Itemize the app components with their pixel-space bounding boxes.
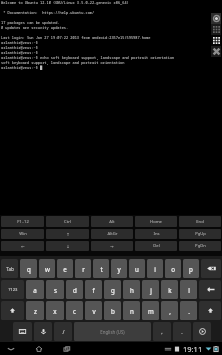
button[interactable]: , [153,322,171,341]
staticText: k [168,286,172,294]
staticText: English (US) [100,329,125,335]
button[interactable]: w [39,259,55,278]
button[interactable]: Shift [199,301,221,320]
staticText: ← [21,244,25,249]
staticText: y [117,265,121,273]
button[interactable]: Backspace [201,259,221,278]
button[interactable]: Enter [199,280,221,299]
staticText: g [111,286,115,294]
button[interactable]: x [46,301,64,320]
button[interactable]: / [54,322,72,341]
button[interactable]: q [20,259,37,278]
button[interactable]: Del [135,241,177,251]
button[interactable]: English (US) [74,322,151,341]
button[interactable]: , [161,301,178,320]
staticText: u [135,265,139,273]
staticText: x [53,307,57,315]
staticText: PgUp [195,231,206,237]
button[interactable]: Home [32,342,46,355]
button[interactable]: v [85,301,102,320]
button[interactable]: . [180,301,197,320]
staticText: f [92,286,95,294]
button[interactable]: . [173,322,191,341]
button[interactable]: End [179,216,221,227]
button[interactable]: k [161,280,178,299]
button[interactable]: Ins [135,229,177,239]
button[interactable]: b [104,301,121,320]
button[interactable]: F1..12 [1,216,44,227]
button[interactable]: PgDn [179,241,221,251]
button[interactable]: ↓ [46,241,89,251]
staticText: j [150,286,152,294]
button[interactable]: Tab [1,259,18,278]
staticText: ↑ [66,232,70,237]
button[interactable]: Go [193,322,211,341]
button[interactable]: ?123 [1,280,24,299]
button[interactable]: p [183,259,199,278]
button[interactable]: s [46,280,64,299]
button[interactable]: Win [1,229,44,239]
staticText: → [110,244,114,249]
button[interactable]: ↑ [46,229,89,239]
button[interactable]: Switch keyboard [13,322,32,341]
button[interactable]: f [85,280,102,299]
button[interactable]: r [75,259,91,278]
staticText: c [73,307,76,315]
staticText: m [148,307,154,315]
button[interactable]: m [142,301,159,320]
staticText: z [34,307,37,315]
button[interactable]: PgUp [179,229,221,239]
staticText: t [100,265,103,273]
button[interactable]: h [123,280,140,299]
staticText: End [196,219,204,225]
button[interactable]: g [104,280,121,299]
staticText: Alt [109,219,115,225]
button[interactable]: o [165,259,181,278]
staticText: n [130,307,134,315]
staticText: Win [19,231,27,237]
button[interactable]: y [111,259,127,278]
staticText: Tab [6,266,14,272]
staticText: Welcome to Ubuntu 12.10 (GNU/Linux 3.5.0… [1,0,175,70]
staticText: , [161,328,163,335]
button[interactable]: Home [135,216,177,227]
staticText: Del [153,243,160,249]
staticText: Ins [153,231,160,237]
staticText: . [181,328,183,335]
staticText: e [63,265,67,273]
staticText: PgDn [195,243,206,249]
staticText: F1..12 [17,219,29,225]
button[interactable]: Keyboard toggle [211,24,221,35]
button[interactable]: c [66,301,83,320]
staticText: a [33,286,37,294]
button[interactable]: AltGr [91,229,133,239]
button[interactable]: u [129,259,145,278]
button[interactable]: Shift [1,301,24,320]
staticText: Home [150,219,162,225]
staticText: i [154,265,156,273]
button[interactable]: d [66,280,83,299]
button[interactable]: l [180,280,197,299]
button[interactable]: Alt [91,216,133,227]
button[interactable]: ← [1,241,44,251]
button[interactable]: Settings [211,13,221,24]
button[interactable]: Recent apps [60,342,74,355]
button[interactable]: t [93,259,109,278]
staticText: s [54,286,57,294]
staticText: ↓ [66,244,70,249]
button[interactable]: a [26,280,44,299]
button[interactable]: n [123,301,140,320]
button[interactable]: Keypad [211,35,221,46]
button[interactable]: i [147,259,163,278]
button[interactable]: Voice input [34,322,52,341]
button[interactable]: z [26,301,44,320]
staticText: o [171,265,175,273]
button[interactable]: j [142,280,159,299]
button[interactable]: → [91,241,133,251]
button[interactable]: Ctrl [46,216,89,227]
button[interactable]: Close [211,46,221,57]
staticText: , [169,307,171,315]
button[interactable]: Back [4,342,18,355]
staticText: h [130,286,134,294]
button[interactable]: e [57,259,73,278]
